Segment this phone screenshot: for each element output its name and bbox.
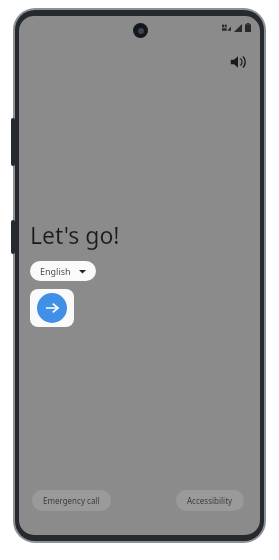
button[interactable]: Next [30, 289, 74, 327]
button[interactable]: Accessibility [176, 490, 244, 511]
staticText: Let's go! [30, 219, 120, 250]
staticText: Emergency call [43, 495, 100, 506]
button[interactable]: Sound [226, 50, 250, 74]
staticText: Accessibility [187, 495, 233, 506]
staticText: English [40, 265, 71, 277]
button[interactable]: Emergency call [32, 490, 111, 511]
button[interactable]: English [30, 261, 96, 281]
